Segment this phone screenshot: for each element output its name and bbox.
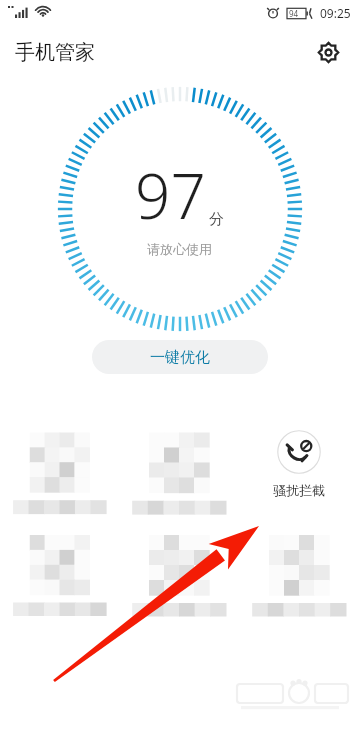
staticText: 骚扰拦截 [273,482,325,498]
button[interactable] [0,519,119,619]
button[interactable]: 一键优化 [92,340,268,374]
staticText: 94 [289,8,299,19]
staticText: 一键优化 [150,348,210,367]
button[interactable] [0,416,119,519]
button[interactable] [119,416,239,519]
staticText: 分 [209,210,224,229]
staticText: 请放心使用 [147,241,212,257]
button[interactable] [239,519,359,619]
staticText: 手机管家 [15,40,95,65]
staticText: 97 [135,153,206,237]
button[interactable]: 骚扰拦截 [239,416,359,519]
button[interactable] [119,519,239,619]
staticText: 09:25 [320,5,351,21]
button[interactable]: Settings [307,31,349,73]
